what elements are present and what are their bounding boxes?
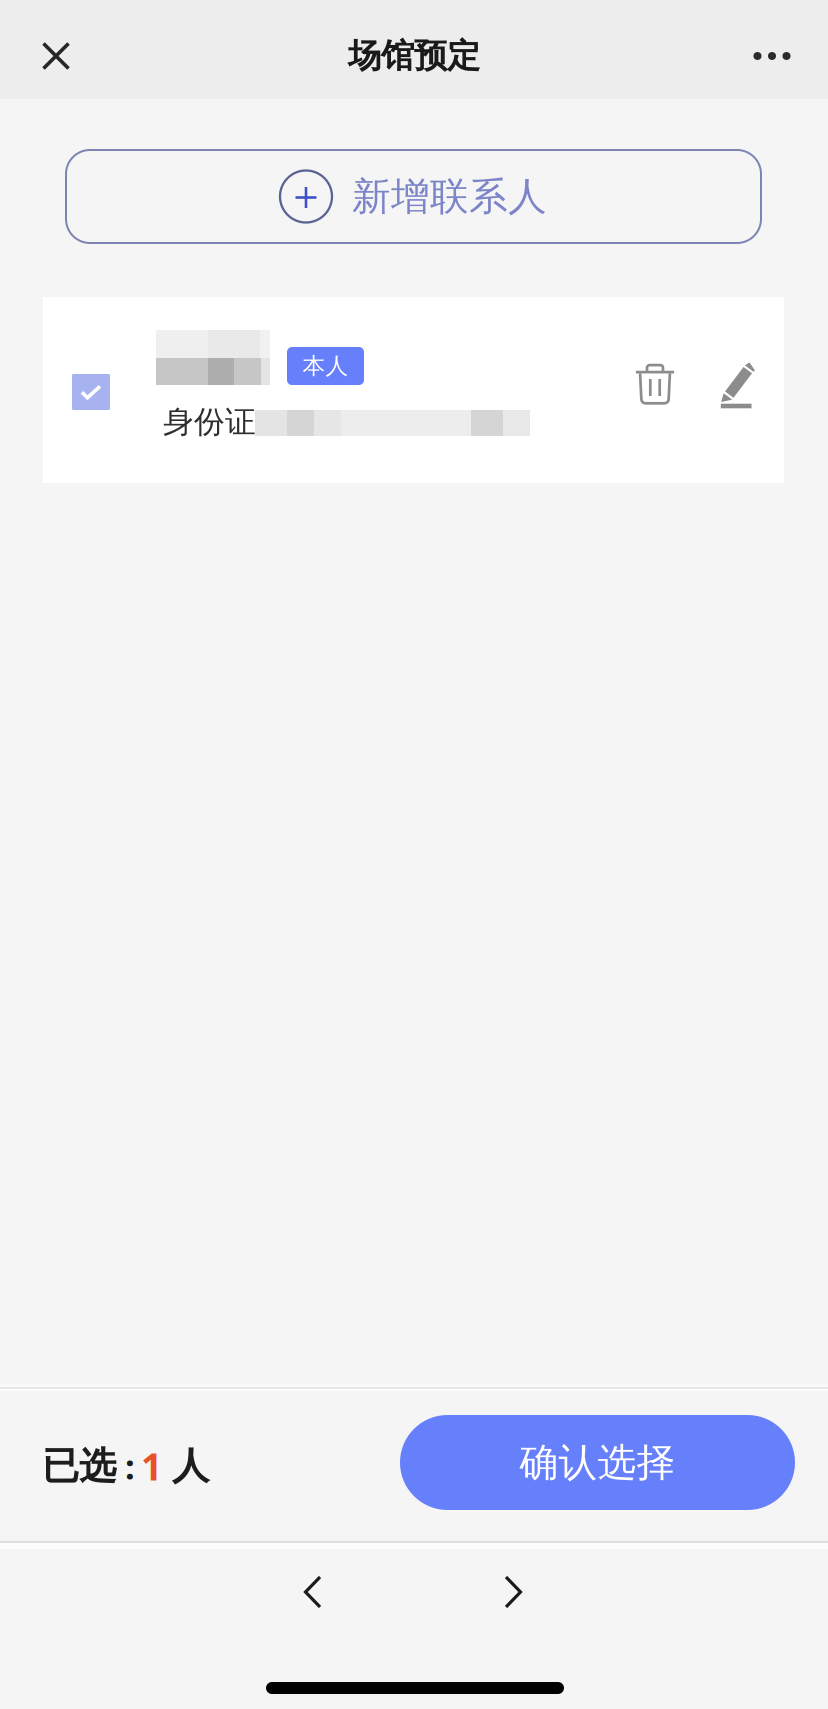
staticText: 确认选择 xyxy=(519,1439,675,1486)
button[interactable]: Selected contact xyxy=(54,356,128,428)
button[interactable]: Back xyxy=(268,1558,358,1626)
button[interactable]: Delete contact xyxy=(617,336,693,432)
staticText: 身份证 xyxy=(163,403,256,441)
button[interactable]: 新增联系人 xyxy=(66,150,761,243)
button[interactable]: Edit contact xyxy=(700,337,776,433)
staticText: 场馆预定 xyxy=(348,35,480,76)
button[interactable]: 确认选择 xyxy=(400,1415,795,1510)
staticText: 本人 xyxy=(302,352,348,380)
button[interactable]: Forward xyxy=(468,1558,558,1626)
button[interactable]: Close xyxy=(0,0,112,112)
staticText: : xyxy=(125,1443,135,1489)
staticText: 人 xyxy=(172,1443,209,1489)
staticText: 已选 xyxy=(42,1443,116,1489)
staticText: 1 xyxy=(141,1441,162,1491)
button[interactable]: More options xyxy=(716,0,828,112)
staticText: 新增联系人 xyxy=(352,173,547,220)
